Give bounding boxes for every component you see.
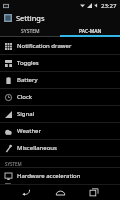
staticText: PAC-MAN xyxy=(79,28,102,35)
button[interactable]: Recents xyxy=(86,184,102,200)
staticText: Clock xyxy=(17,93,33,101)
button[interactable]: Notification drawer xyxy=(0,38,120,55)
button[interactable]: SYSTEM xyxy=(0,25,60,37)
button[interactable]: Clock xyxy=(0,89,120,106)
button[interactable]: Back xyxy=(18,184,34,200)
button[interactable]: Home xyxy=(52,184,68,200)
staticText: SYSTEM xyxy=(5,161,22,167)
staticText: Notification drawer xyxy=(17,42,72,50)
button[interactable]: Weather xyxy=(0,123,120,140)
button[interactable]: Hardware acceleration xyxy=(0,168,120,184)
staticText: Signal xyxy=(17,110,35,118)
staticText: Weather xyxy=(17,127,41,135)
staticText: Settings xyxy=(16,13,45,23)
staticText: Battery xyxy=(17,76,38,84)
staticText: Toggles xyxy=(17,59,39,67)
button[interactable]: Toggles xyxy=(0,55,120,72)
button[interactable]: PAC-MAN xyxy=(60,25,120,37)
staticText: Hardware acceleration xyxy=(17,172,81,180)
button[interactable]: Settings xyxy=(0,11,120,25)
button[interactable]: Miscellaneous xyxy=(0,140,120,157)
staticText: SYSTEM xyxy=(21,28,40,35)
button[interactable]: Signal xyxy=(0,106,120,123)
staticText: 23:27 xyxy=(101,2,117,10)
button[interactable]: Battery xyxy=(0,72,120,89)
staticText: Miscellaneous xyxy=(17,144,57,152)
